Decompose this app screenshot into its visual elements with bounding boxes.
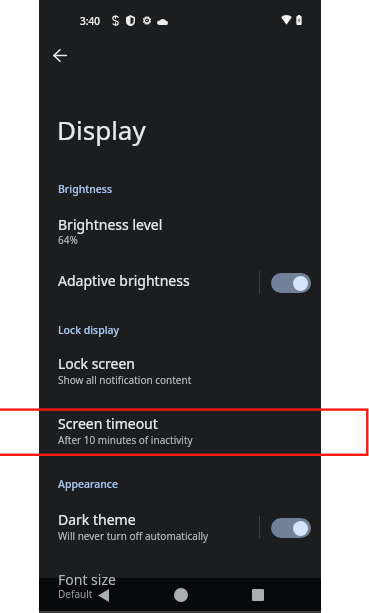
staticText: Brightness — [58, 182, 113, 196]
staticText: Lock display — [58, 323, 120, 337]
staticText: Brightness level — [58, 215, 163, 234]
button[interactable] — [39, 263, 321, 299]
staticText: Default — [58, 587, 93, 601]
staticText: 64% — [58, 233, 78, 247]
button[interactable]: Toggle — [271, 518, 311, 538]
staticText: Show all notification content — [58, 373, 192, 387]
button[interactable]: Navigate up — [40, 35, 80, 75]
staticText: Adaptive brightness — [58, 271, 190, 290]
staticText: Font size — [58, 570, 116, 589]
staticText: Will never turn off automatically — [58, 529, 209, 543]
staticText: Dark theme — [58, 510, 136, 529]
staticText: Lock screen — [58, 354, 136, 373]
staticText: Screen timeout — [58, 414, 158, 433]
button[interactable]: Home — [169, 583, 193, 607]
button[interactable]: Toggle — [271, 273, 311, 293]
button[interactable] — [39, 350, 321, 387]
button[interactable] — [39, 211, 321, 247]
button[interactable]: Back — [91, 583, 115, 607]
staticText: 3:40 — [80, 14, 100, 28]
button[interactable] — [39, 506, 321, 543]
staticText: After 10 minutes of inactivity — [58, 433, 193, 447]
staticText: Display — [57, 112, 146, 147]
staticText: Appearance — [58, 477, 118, 491]
button[interactable] — [39, 410, 321, 447]
button[interactable]: Recent apps — [246, 583, 270, 607]
